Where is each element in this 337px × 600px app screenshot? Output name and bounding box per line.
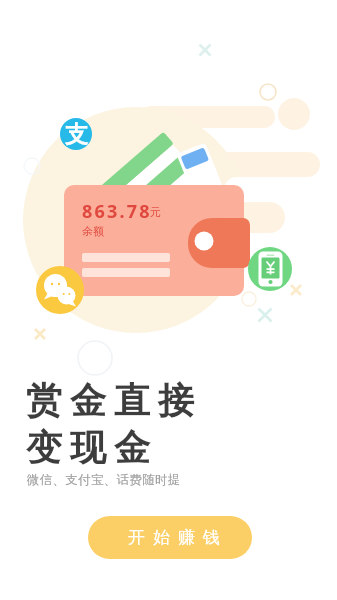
staticText: 微信、支付宝、话费随时提 <box>27 472 181 488</box>
staticText: 赏金直接 <box>22 378 198 423</box>
staticText: 支 <box>65 120 88 149</box>
staticText: 变现金 <box>22 425 154 470</box>
staticText: 元 <box>150 205 161 219</box>
other: Alipay <box>60 118 92 150</box>
staticText: 开始赚钱 <box>124 527 224 548</box>
button[interactable]: 开始赚钱 <box>88 516 252 559</box>
staticText: 余额 <box>82 224 104 238</box>
staticText: 863.78 <box>82 199 152 224</box>
